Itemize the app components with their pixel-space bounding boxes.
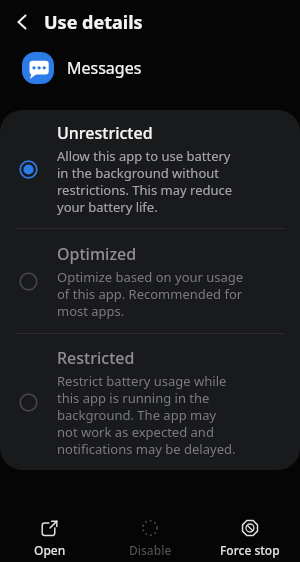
staticText: Unrestricted bbox=[57, 122, 153, 144]
button[interactable]: Open bbox=[0, 519, 100, 558]
button[interactable]: Force stop bbox=[200, 519, 300, 558]
staticText: Allow this app to use battery in the bac… bbox=[57, 147, 233, 216]
staticText: Open bbox=[34, 542, 66, 558]
staticText: Use details bbox=[44, 10, 143, 35]
staticText: Disable bbox=[129, 542, 172, 558]
staticText: Force stop bbox=[220, 542, 280, 558]
button[interactable]: Disable bbox=[100, 519, 200, 558]
button[interactable]: Messages bbox=[22, 52, 300, 84]
staticText: Messages bbox=[67, 57, 142, 79]
staticText: Optimized bbox=[57, 243, 137, 265]
button[interactable]: Unrestricted bbox=[0, 110, 300, 228]
button[interactable] bbox=[0, 0, 44, 44]
staticText: Optimize based on your usage of this app… bbox=[57, 268, 244, 320]
button[interactable]: Restricted bbox=[0, 334, 300, 470]
staticText: Restrict battery usage while this app is… bbox=[57, 372, 236, 458]
staticText: Restricted bbox=[57, 347, 135, 369]
button[interactable]: Optimized bbox=[0, 229, 300, 333]
